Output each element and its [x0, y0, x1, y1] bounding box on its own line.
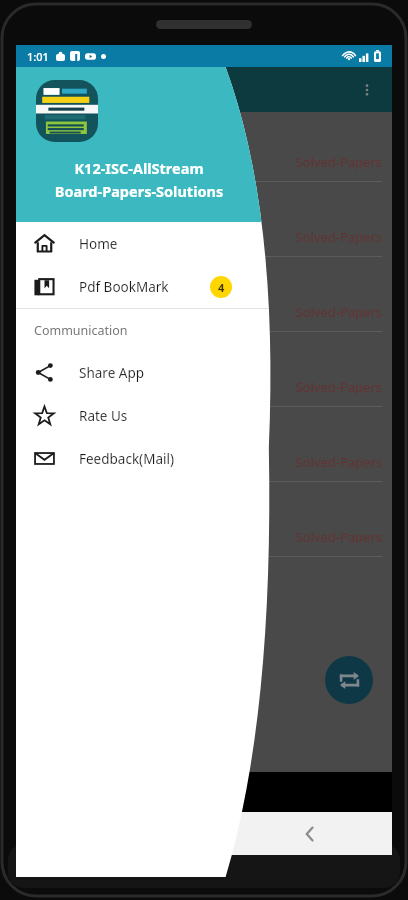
staticText: 4 [218, 280, 225, 295]
button[interactable]: Pdf BookMark [16, 265, 278, 308]
staticText: Home [79, 235, 118, 253]
staticText: K12-ISC Commerce Stream [26, 269, 198, 287]
staticText: K12-ISC (Humanities) Stream [26, 124, 212, 142]
staticText: Solved-Papers [26, 378, 382, 396]
button[interactable]: K12-ISC (Humanities) Stream [16, 112, 392, 182]
staticText: Communication [34, 322, 128, 339]
button[interactable]: K12-ISC Arts Stream [16, 332, 392, 407]
button[interactable]: Share App [16, 351, 278, 394]
button[interactable]: Feedback(Mail) [16, 437, 278, 480]
staticText: Solved-Papers [26, 453, 382, 471]
button[interactable]: Home [16, 222, 278, 265]
staticText: Share App [79, 364, 144, 382]
staticText: Solved-Papers [26, 228, 382, 246]
button[interactable]: Rate Us [16, 394, 278, 437]
staticText: Solved-Papers [26, 153, 382, 171]
staticText: Solved-Papers [26, 528, 382, 546]
staticText: K12-ISC Science Stream [26, 194, 177, 212]
button[interactable]: Back [287, 812, 333, 855]
button[interactable]: K12-ISC Commerce Stream [16, 257, 392, 332]
staticText: Pdf BookMark [79, 278, 169, 296]
staticText: Rate Us [79, 407, 128, 425]
staticText: K12-ISC Vocational Stream [26, 419, 197, 437]
button[interactable]: Refresh [325, 656, 373, 704]
staticText: Feedback(Mail) [79, 450, 174, 468]
staticText: 1:01 [27, 49, 49, 64]
staticText: Solved-Papers [26, 303, 382, 321]
staticText: Board-Papers-Solutions [36, 181, 242, 201]
staticText: K12-ISC-AllStream [36, 158, 242, 178]
button[interactable]: K12-ISC Mixed Stream [16, 482, 392, 557]
button[interactable]: K12-ISC Vocational Stream [16, 407, 392, 482]
button[interactable]: K12-ISC Science Stream [16, 182, 392, 257]
button[interactable]: More options [350, 73, 384, 107]
